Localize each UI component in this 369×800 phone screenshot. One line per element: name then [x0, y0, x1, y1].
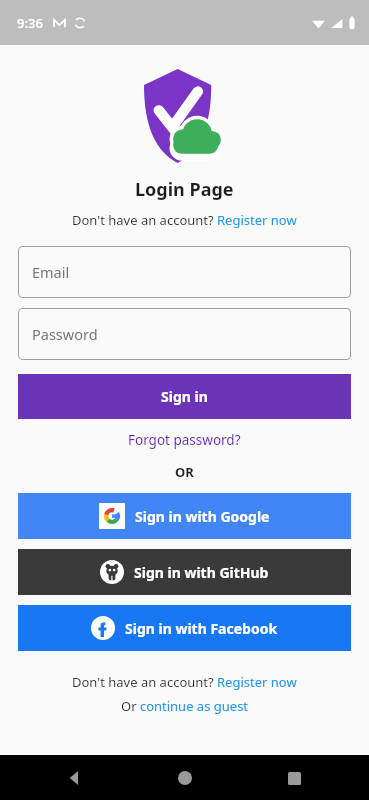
- button[interactable]: Home: [168, 761, 202, 795]
- staticText: Login Page: [135, 177, 234, 202]
- staticText: Sign in with GitHub: [134, 563, 269, 582]
- button[interactable]: Sign in with GitHub: [18, 549, 351, 595]
- staticText: 9:36: [17, 14, 43, 32]
- staticText: OR: [175, 463, 194, 481]
- button[interactable]: Don't have an account? Register now: [72, 211, 297, 229]
- button[interactable]: Don't have an account? Register now: [72, 673, 297, 691]
- staticText: Sign in: [161, 387, 208, 406]
- button[interactable]: Sign in with Google: [18, 493, 351, 539]
- button[interactable]: Email: [18, 246, 351, 298]
- button[interactable]: Or continue as guest: [121, 697, 249, 715]
- button[interactable]: Sign in with Facebook: [18, 605, 351, 651]
- button[interactable]: Password: [18, 308, 351, 360]
- button[interactable]: Recent apps: [277, 761, 311, 795]
- staticText: Sign in with Google: [135, 507, 270, 526]
- button[interactable]: Sign in: [18, 374, 351, 419]
- staticText: Password: [32, 324, 98, 344]
- staticText: Email: [32, 262, 70, 282]
- button[interactable]: Forgot password?: [128, 431, 241, 449]
- button[interactable]: Back: [58, 761, 92, 795]
- staticText: Sign in with Facebook: [125, 619, 278, 638]
- staticText: Don't have an account? Register now: [72, 211, 297, 229]
